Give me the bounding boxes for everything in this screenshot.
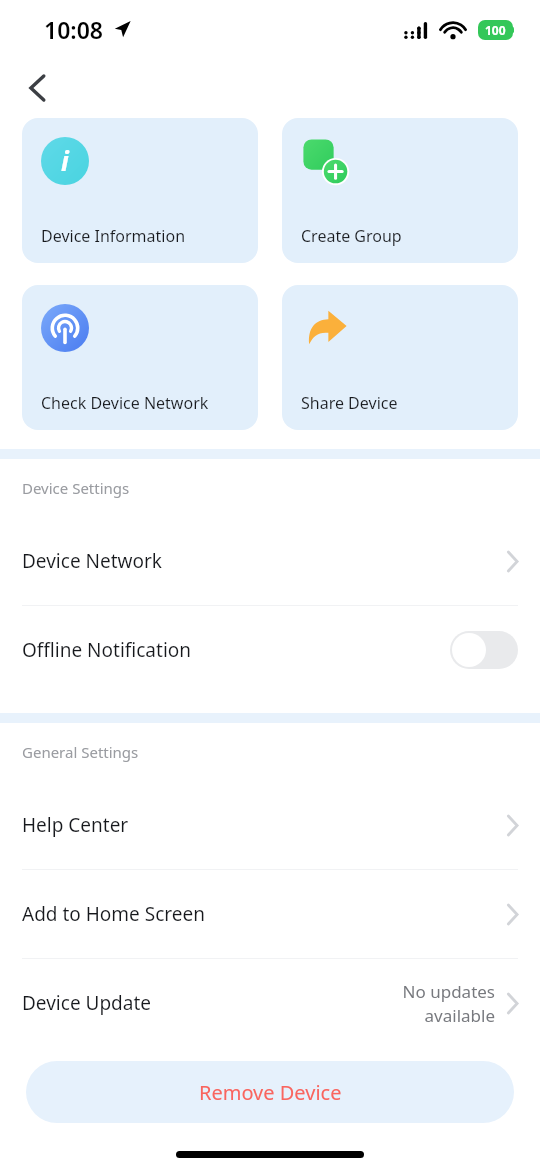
staticText: 100 xyxy=(485,22,506,38)
staticText: Share Device xyxy=(301,392,398,414)
staticText: General Settings xyxy=(22,742,139,762)
staticText: i xyxy=(61,143,69,178)
button[interactable]: Remove Device xyxy=(26,1061,514,1123)
staticText: Device Information xyxy=(41,225,186,247)
staticText: Device Settings xyxy=(22,478,130,498)
staticText: Remove Device xyxy=(199,1079,342,1106)
button[interactable]: Help Center xyxy=(0,781,540,869)
button[interactable]: Check Device Network xyxy=(22,285,258,430)
staticText: Offline Notification xyxy=(22,637,192,663)
staticText: Device Update xyxy=(22,990,152,1016)
button[interactable]: Share Device xyxy=(282,285,518,430)
button[interactable]: Device Update xyxy=(0,959,540,1047)
button[interactable]: Create Group xyxy=(282,118,518,263)
button[interactable]: i xyxy=(22,118,258,263)
staticText: Create Group xyxy=(301,225,402,247)
button[interactable]: Device Network xyxy=(0,517,540,605)
staticText: 10:08 xyxy=(44,14,103,45)
staticText: Check Device Network xyxy=(41,392,209,414)
button[interactable]: Add to Home Screen xyxy=(0,870,540,958)
staticText: Device Network xyxy=(22,548,162,574)
button[interactable]: Offline Notification toggle, off xyxy=(450,631,518,669)
staticText: Help Center xyxy=(22,812,129,838)
button[interactable]: Back xyxy=(14,65,60,111)
staticText: Add to Home Screen xyxy=(22,901,205,927)
staticText: No updates available xyxy=(402,980,495,1027)
